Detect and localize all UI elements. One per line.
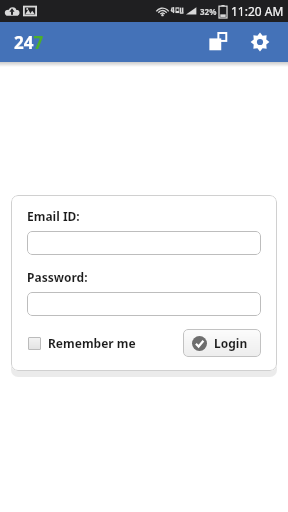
staticText: 11:20 AM [231,3,284,19]
staticText: 247 [14,31,44,54]
staticText: Email ID: [27,208,80,224]
button[interactable]: Multi window [198,22,238,62]
staticText: 32% [200,6,217,17]
button[interactable]: Login [183,329,261,357]
button[interactable]: Remember me [27,331,137,355]
button[interactable]: 247 [10,27,48,58]
button[interactable]: Text input [27,292,261,316]
button[interactable]: Text input [27,231,261,255]
button[interactable]: Settings [240,22,280,62]
staticText: Login [214,335,248,351]
staticText: Password: [27,269,88,285]
staticText: Remember me [48,335,136,351]
